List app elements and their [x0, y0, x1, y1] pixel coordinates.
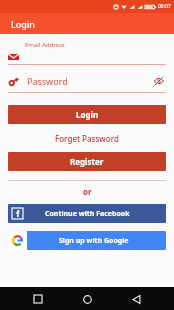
button[interactable]: Home — [76, 288, 98, 310]
other: Email — [8, 53, 19, 61]
button[interactable]: Sign up with Google — [8, 231, 166, 250]
staticText: Continue with Facebook — [45, 209, 130, 219]
staticText: Login — [11, 18, 35, 30]
staticText: Sign up with Google — [59, 236, 129, 246]
button[interactable]: Recent apps — [27, 288, 49, 310]
button[interactable]: Back — [125, 288, 147, 310]
staticText: Login — [76, 109, 99, 120]
button[interactable]: Register — [8, 152, 166, 171]
button[interactable]: Toggle password visibility — [152, 74, 166, 88]
button[interactable]: Continue with Facebook — [8, 204, 166, 223]
staticText: Password — [27, 75, 68, 87]
staticText: Email Address — [25, 41, 65, 49]
staticText: Forget Password — [55, 133, 119, 144]
button[interactable]: Login — [8, 105, 166, 124]
staticText: Register — [70, 156, 104, 167]
staticText: 06:07 — [158, 3, 171, 10]
staticText: or — [83, 186, 92, 197]
button[interactable]: Forget Password — [0, 130, 174, 147]
